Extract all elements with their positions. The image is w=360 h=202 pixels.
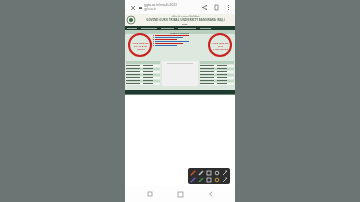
button[interactable]: row2 tool 4 <box>222 178 228 182</box>
button[interactable]: row2 tool 1 <box>198 178 204 182</box>
button[interactable]: row1 tool 2 <box>206 170 212 176</box>
staticText: B.A. II & III <box>134 44 147 47</box>
staticText: गोविन्द गुरु जनजातीय विश्वविद्यालय <box>171 15 200 18</box>
button[interactable]: Click Here for <box>128 33 152 57</box>
staticText: B.Sc. <box>218 44 224 47</box>
staticText: Click Here for <box>212 41 229 44</box>
staticText: Click Here for <box>132 41 149 44</box>
staticText: Latest Activities <box>170 31 190 34</box>
button[interactable]: Close <box>128 3 137 12</box>
button[interactable]: row1 tool 3 <box>214 170 220 176</box>
button[interactable]: Click Here for <box>208 33 232 57</box>
button[interactable]: Download <box>212 3 220 11</box>
staticText: ggtu.ac.in <box>144 7 157 11</box>
button[interactable]: Recents <box>144 188 156 200</box>
button[interactable]: row1 tool 4 <box>222 170 228 176</box>
button[interactable]: row1 tool 0 <box>190 170 196 176</box>
button[interactable]: Home <box>174 188 186 200</box>
staticText: ggtu.ac.in/result-2023 <box>144 3 177 7</box>
button[interactable]: row2 tool 3 <box>214 178 220 182</box>
button[interactable]: Share <box>200 3 208 11</box>
button[interactable]: More options <box>224 3 232 11</box>
staticText: Result <box>137 47 145 50</box>
staticText: I Year Result <box>213 47 228 50</box>
button[interactable]: row1 tool 1 <box>198 170 204 176</box>
staticText: GOVIND GURU TRIBAL UNIVERSITY BANSWARA (… <box>146 18 225 22</box>
button[interactable]: Back <box>205 188 217 200</box>
button[interactable]: row2 tool 0 <box>190 178 196 182</box>
staticText: 2023 <box>182 22 188 25</box>
button[interactable]: row2 tool 2 <box>206 178 212 182</box>
